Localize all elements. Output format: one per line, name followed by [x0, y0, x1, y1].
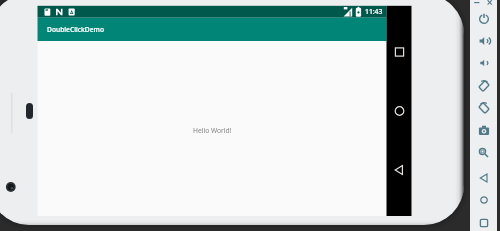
button[interactable]: Volume up — [473, 30, 495, 52]
button[interactable]: Zoom — [473, 142, 495, 164]
button[interactable]: Home — [473, 189, 495, 211]
button[interactable]: Home — [387, 99, 412, 123]
button[interactable]: Rotate left — [473, 75, 495, 97]
button[interactable]: Back — [387, 158, 412, 182]
button[interactable]: Overview — [387, 40, 412, 64]
button[interactable]: Overview — [473, 212, 495, 231]
button[interactable]: Power — [473, 8, 495, 30]
button[interactable]: Rotate right — [473, 97, 495, 119]
button[interactable]: Volume down — [473, 52, 495, 74]
staticText: 11:43 — [365, 7, 383, 16]
button[interactable]: Back — [473, 167, 495, 189]
button[interactable]: DoubleClickDemo — [38, 18, 387, 41]
staticText: DoubleClickDemo — [47, 25, 104, 34]
button[interactable]: Take screenshot — [473, 120, 495, 142]
staticText: Hello World! — [193, 126, 232, 135]
